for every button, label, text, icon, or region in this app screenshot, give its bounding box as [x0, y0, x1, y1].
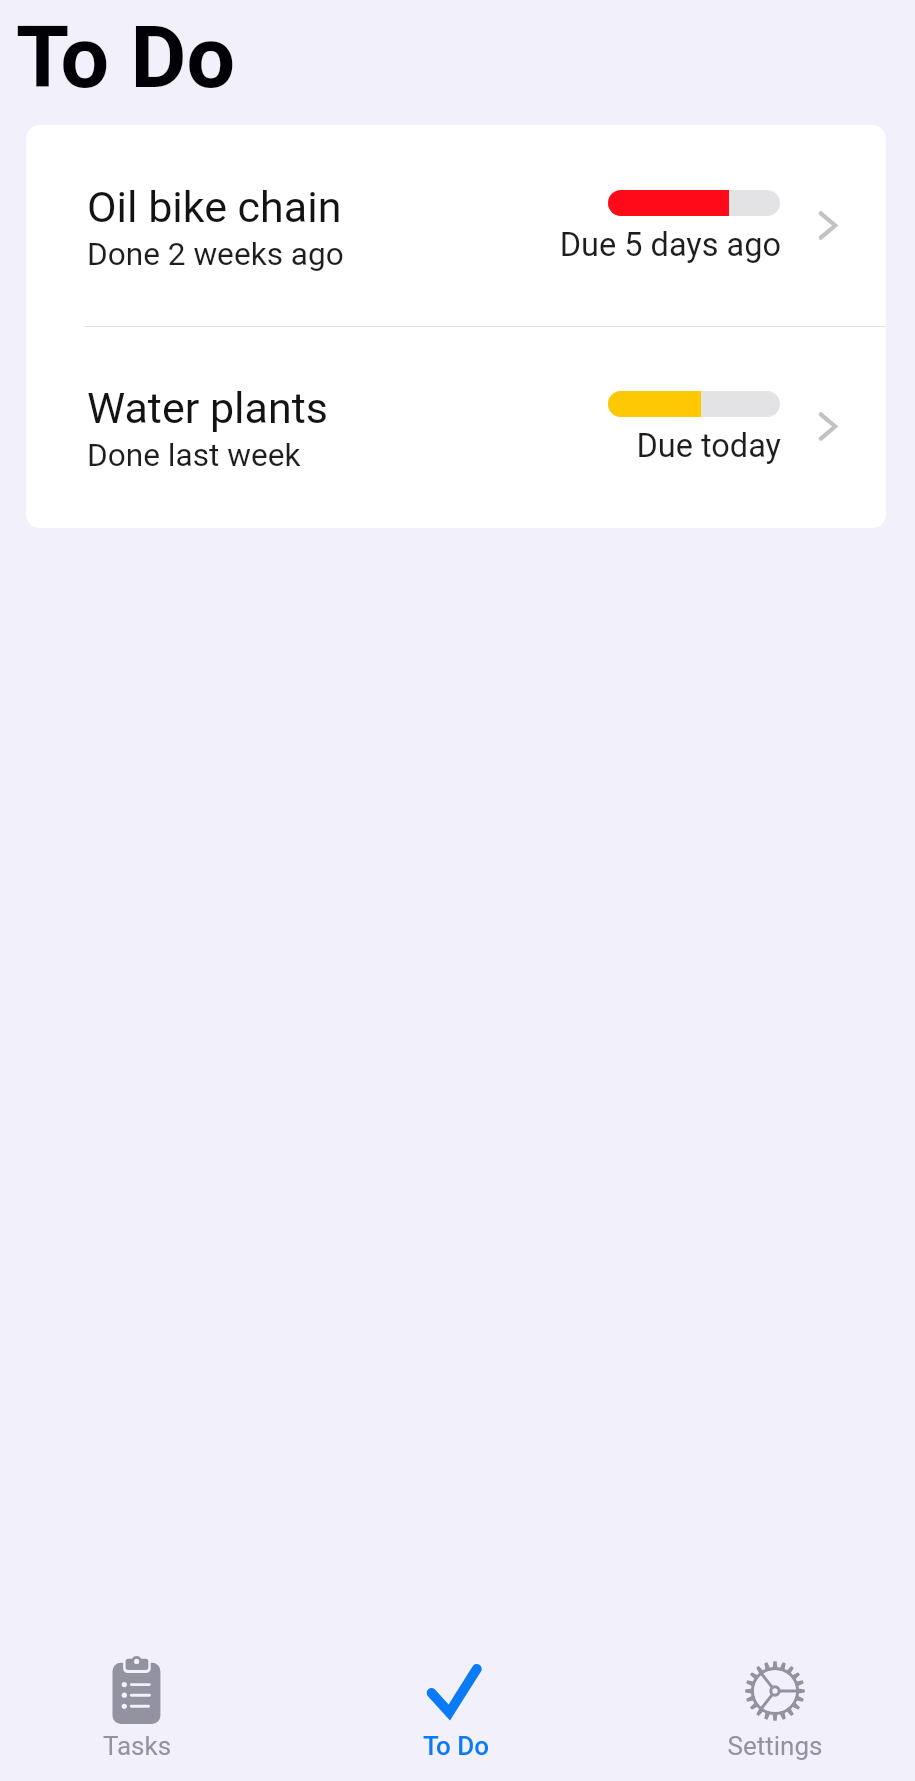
button[interactable]: Settings [675, 1646, 875, 1772]
button[interactable]: Oil bike chain [26, 125, 886, 325]
staticText: Oil bike chain [87, 182, 342, 232]
other: Open task [818, 412, 838, 441]
staticText: Tasks [37, 1731, 237, 1761]
staticText: Due 5 days ago [481, 226, 781, 264]
other: Settings [741, 1657, 809, 1725]
staticText: To Do [356, 1731, 556, 1761]
staticText: Water plants [87, 383, 328, 433]
other: Open task [818, 211, 838, 240]
button[interactable]: Water plants [26, 326, 886, 527]
staticText: To Do [16, 7, 236, 108]
button[interactable]: Tasks [37, 1646, 237, 1772]
other: Tasks [104, 1653, 170, 1725]
staticText: Due today [481, 427, 781, 465]
button[interactable]: To Do [356, 1646, 556, 1772]
other: To Do [423, 1659, 489, 1725]
staticText: Done 2 weeks ago [87, 236, 344, 273]
staticText: Done last week [87, 437, 301, 474]
staticText: Settings [675, 1731, 875, 1761]
